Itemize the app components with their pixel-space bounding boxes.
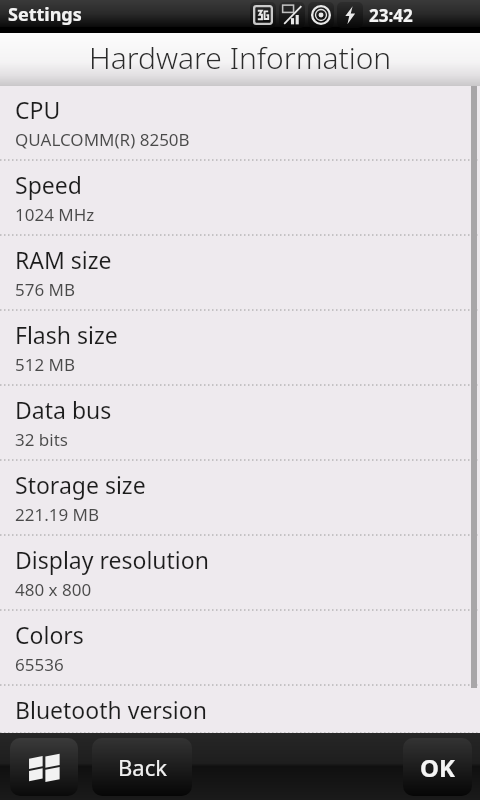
button[interactable]: Display resolution [0,536,480,610]
staticText: QUALCOMM(R) 8250B [15,128,190,151]
button[interactable]: Bluetooth version [0,686,480,733]
button[interactable]: Flash size [0,311,480,385]
button[interactable]: Colors [0,611,480,685]
button[interactable]: Back [92,738,192,796]
staticText: Settings [8,2,82,27]
staticText: 576 MB [15,278,76,301]
staticText: Back [118,752,167,782]
staticText: Data bus [15,394,112,425]
staticText: 2.1/2.1 EDR [15,728,107,733]
button[interactable]: Speed [0,161,480,235]
staticText: OK [420,751,455,784]
staticText: 65536 [15,653,64,676]
staticText: Speed [15,169,82,200]
staticText: RAM size [15,244,112,275]
staticText: 512 MB [15,353,76,376]
staticText: 1024 MHz [15,203,95,226]
staticText: 23:42 [369,4,413,27]
button[interactable]: RAM size [0,236,480,310]
staticText: 221.19 MB [15,503,100,526]
button[interactable]: OK [403,738,472,796]
staticText: 32 bits [15,428,68,451]
staticText: Storage size [15,469,146,500]
staticText: Display resolution [15,544,209,575]
button[interactable]: Start [10,738,78,796]
staticText: Colors [15,619,84,650]
staticText: CPU [15,94,61,125]
button[interactable]: Storage size [0,461,480,535]
staticText: Hardware Information [89,37,392,78]
button[interactable]: CPU [0,86,480,160]
staticText: Bluetooth version [15,694,207,725]
staticText: 480 x 800 [15,578,92,601]
staticText: Flash size [15,319,118,350]
button[interactable]: Data bus [0,386,480,460]
